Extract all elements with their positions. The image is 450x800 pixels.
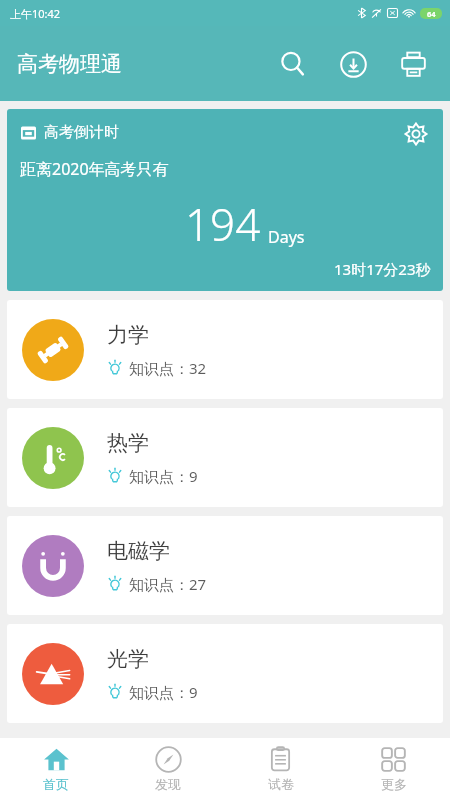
button[interactable]: 更多 bbox=[337, 738, 450, 800]
staticText: 13时17分23秒 bbox=[334, 259, 431, 279]
button[interactable]: 热学 bbox=[7, 408, 443, 507]
button[interactable]: 力学 bbox=[7, 300, 443, 399]
staticText: 距离2020年高考只有 bbox=[20, 158, 169, 180]
staticText: 热学 bbox=[107, 430, 149, 456]
staticText: 力学 bbox=[107, 322, 149, 348]
staticText: 更多 bbox=[381, 776, 407, 792]
button[interactable]: 电磁学 bbox=[7, 516, 443, 615]
staticText: 首页 bbox=[43, 776, 69, 792]
button[interactable]: 高考倒计时 bbox=[7, 109, 443, 291]
staticText: 高考物理通 bbox=[17, 51, 122, 77]
button[interactable]: 首页 bbox=[0, 738, 112, 800]
staticText: 194 bbox=[185, 194, 261, 254]
button[interactable]: 光学 bbox=[7, 624, 443, 723]
staticText: 试卷 bbox=[268, 776, 294, 792]
button[interactable]: Settings bbox=[399, 117, 433, 151]
staticText: 知识点：27 bbox=[129, 574, 207, 594]
staticText: 光学 bbox=[107, 646, 149, 672]
staticText: 上午10:42 bbox=[10, 6, 61, 21]
button[interactable]: Search bbox=[270, 41, 316, 87]
staticText: 知识点：32 bbox=[129, 358, 207, 378]
button[interactable]: Print bbox=[390, 41, 436, 87]
staticText: 高考倒计时 bbox=[44, 123, 119, 142]
staticText: 知识点：9 bbox=[129, 682, 198, 702]
staticText: 知识点：9 bbox=[129, 466, 198, 486]
staticText: 电磁学 bbox=[107, 538, 170, 564]
staticText: 发现 bbox=[155, 776, 181, 792]
button[interactable]: 发现 bbox=[112, 738, 224, 800]
button[interactable]: Download bbox=[330, 41, 376, 87]
button[interactable]: 试卷 bbox=[224, 738, 337, 800]
staticText: 64 bbox=[427, 9, 436, 19]
staticText: Days bbox=[268, 226, 305, 248]
